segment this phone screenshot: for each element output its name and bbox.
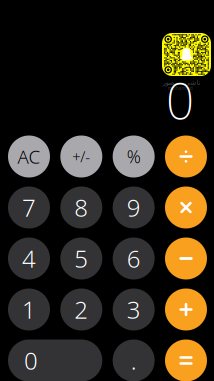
staticText: 4 <box>22 243 36 274</box>
staticText: AC <box>17 144 40 169</box>
button[interactable]: 0 <box>8 339 102 381</box>
button[interactable]: 1 <box>8 288 50 330</box>
staticText: mohamad <box>167 84 192 92</box>
staticText: ناشی مصور <box>162 79 200 86</box>
staticText: 0 <box>166 67 194 133</box>
button[interactable]: Divide <box>165 135 207 177</box>
staticText: 5 <box>74 243 88 274</box>
staticText: 2 <box>74 294 88 325</box>
button[interactable]: Equals <box>165 339 207 381</box>
staticText: . <box>131 345 137 376</box>
staticText: 7 <box>22 192 36 223</box>
staticText: 6 <box>127 243 141 274</box>
button[interactable]: . <box>113 339 155 381</box>
staticText: 1 <box>22 294 36 325</box>
button[interactable]: 2 <box>60 288 102 330</box>
staticText: 3 <box>127 294 141 325</box>
staticText: 8 <box>74 192 88 223</box>
button[interactable]: 9 <box>113 186 155 228</box>
staticText: 9 <box>127 192 141 223</box>
button[interactable]: Multiply <box>165 186 207 228</box>
staticText: +/- <box>72 147 90 166</box>
button[interactable]: 4 <box>8 237 50 279</box>
button[interactable]: Add <box>165 288 207 330</box>
button[interactable]: 7 <box>8 186 50 228</box>
staticText: 0 <box>24 345 38 376</box>
button[interactable]: AC <box>8 135 50 177</box>
staticText: % <box>127 145 141 168</box>
button[interactable]: 6 <box>113 237 155 279</box>
button[interactable]: Snapchat code <box>162 33 211 76</box>
button[interactable]: +/- <box>60 135 102 177</box>
button[interactable]: Subtract <box>165 237 207 279</box>
button[interactable]: 3 <box>113 288 155 330</box>
button[interactable]: 5 <box>60 237 102 279</box>
button[interactable]: 8 <box>60 186 102 228</box>
button[interactable]: % <box>113 135 155 177</box>
